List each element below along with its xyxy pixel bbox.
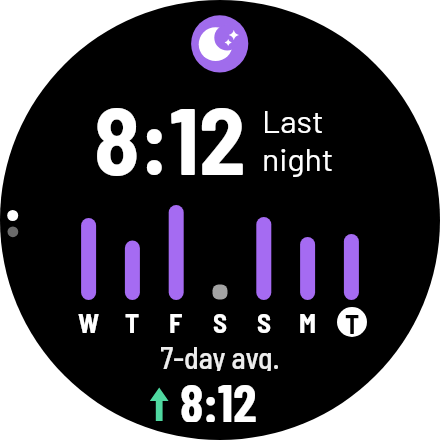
staticText: F [169,306,183,337]
staticText: S [213,306,228,337]
staticText: Last night [262,101,334,177]
button[interactable]: 8:12 [173,370,263,422]
button[interactable]: 8:12 [80,82,260,182]
button[interactable]: T [337,307,367,337]
staticText: M [299,306,317,337]
staticText: T [125,306,140,337]
staticText: T [345,307,360,337]
staticText: S [257,306,272,337]
staticText: 8:12 [180,370,257,422]
staticText: 7-day avg. [160,339,280,371]
staticText: W [78,306,100,337]
staticText: 8:12 [94,82,246,182]
